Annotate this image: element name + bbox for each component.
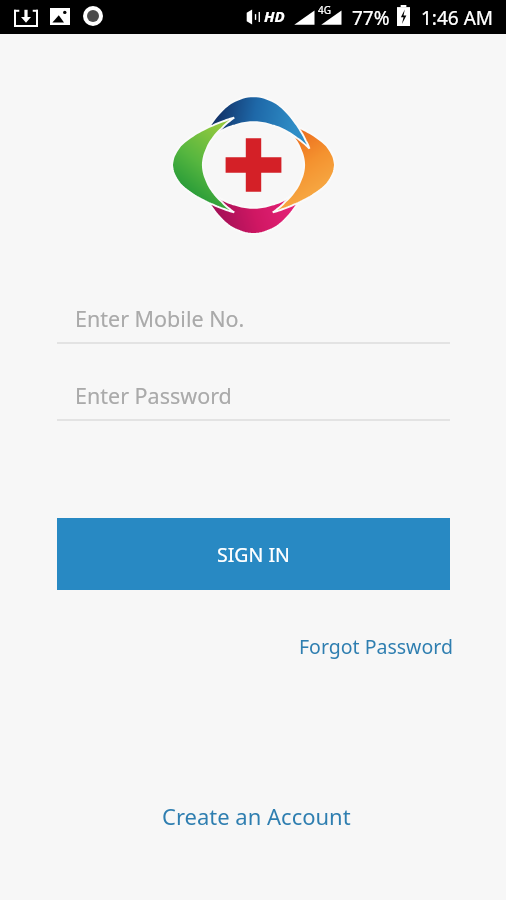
staticText: Forgot Password (299, 633, 453, 660)
staticText: Create an Account (162, 801, 351, 831)
staticText: 77% (352, 5, 390, 31)
staticText: 4G (318, 3, 331, 17)
staticText: Enter Mobile No. (75, 304, 245, 333)
button[interactable]: SIGN IN (57, 518, 450, 590)
staticText: HD (264, 6, 285, 26)
button[interactable]: Enter Mobile No. (57, 294, 450, 344)
button[interactable]: Create an Account (152, 793, 361, 839)
staticText: SIGN IN (217, 541, 290, 568)
button[interactable]: Enter Password (57, 371, 450, 421)
staticText: 1:46 AM (421, 5, 494, 31)
button[interactable]: Forgot Password (289, 625, 463, 668)
staticText: Enter Password (75, 381, 232, 410)
